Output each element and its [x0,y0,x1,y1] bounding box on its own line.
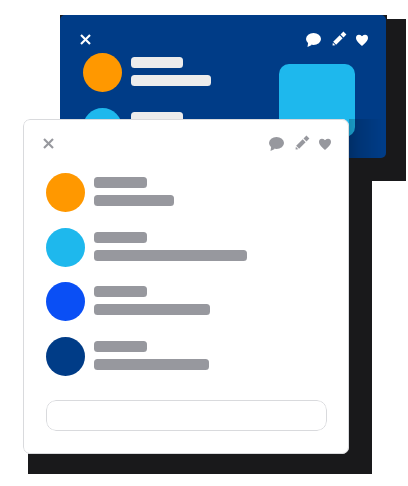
button[interactable]: Edit [327,28,349,50]
button[interactable]: Comments [302,29,324,51]
button[interactable]: Conversation item [83,53,364,92]
button[interactable]: Conversation item [46,337,327,376]
button[interactable]: Like [314,133,336,155]
button[interactable]: Like [351,29,373,51]
button[interactable]: Conversation item [46,282,327,321]
button[interactable]: Conversation item [83,108,364,147]
button[interactable]: Comments [265,133,287,155]
button[interactable]: Write a message [46,400,327,431]
button[interactable]: Close [69,25,101,54]
button[interactable]: Conversation item [46,228,327,267]
button[interactable]: Edit [290,132,312,154]
button[interactable]: Conversation item [46,173,327,212]
button[interactable]: Close [32,129,64,158]
